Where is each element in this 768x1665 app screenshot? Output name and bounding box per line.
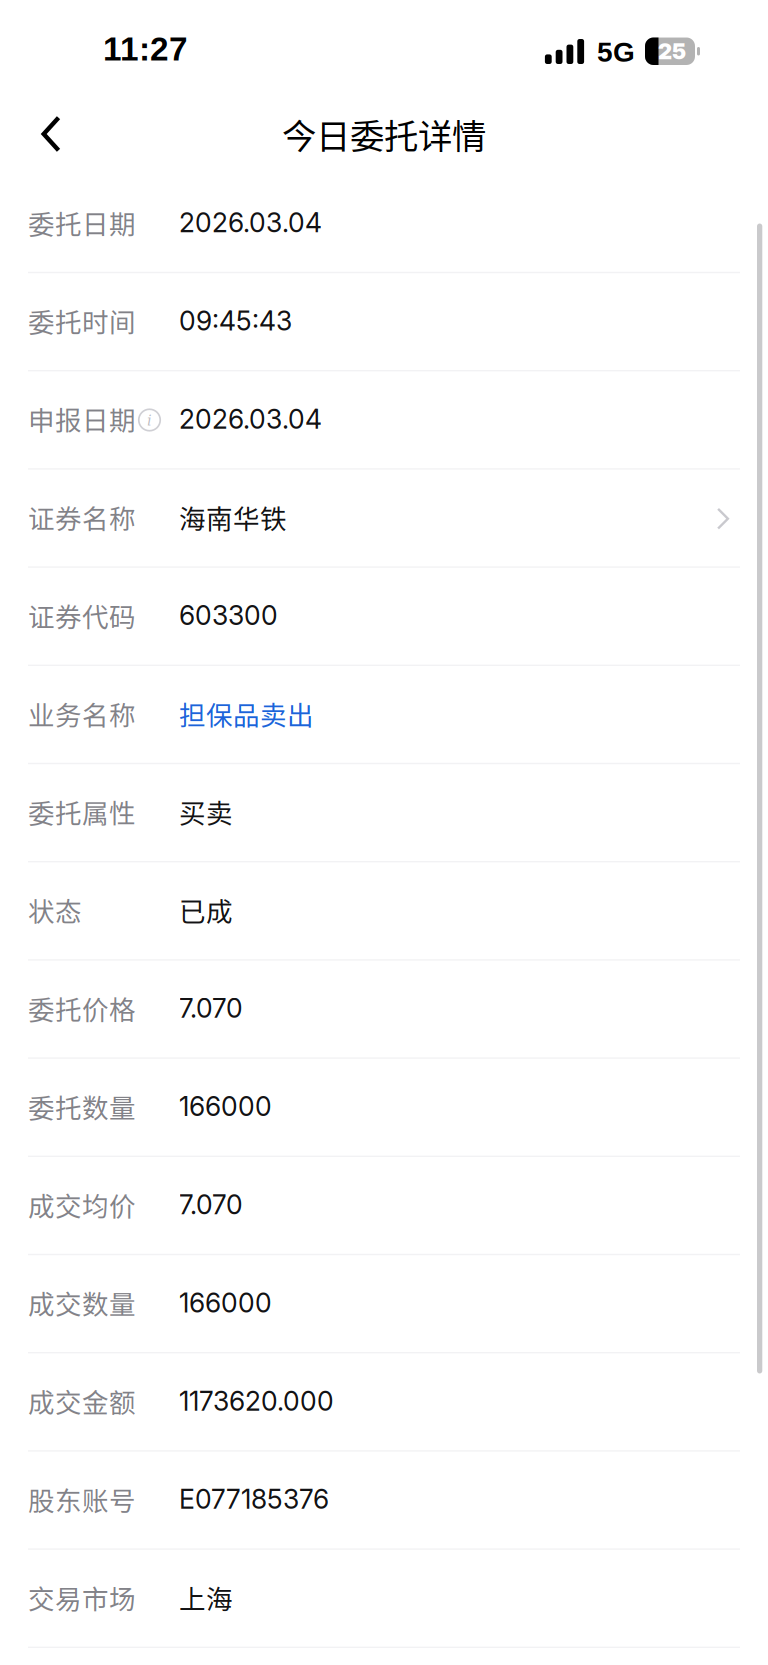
staticText: 25 xyxy=(658,38,686,64)
staticText: 成交均价 xyxy=(28,1185,136,1224)
staticText: 委托属性 xyxy=(28,793,136,831)
staticText: 成交金额 xyxy=(28,1382,136,1420)
staticText: 状态 xyxy=(28,891,82,929)
staticText: 166000 xyxy=(179,1090,272,1122)
staticText: 2026.03.04 xyxy=(179,206,322,239)
staticText: 7.070 xyxy=(179,1188,243,1221)
staticText: 证券代码 xyxy=(28,596,136,635)
staticText: 交易市场 xyxy=(28,1578,136,1617)
staticText: 603300 xyxy=(179,599,278,631)
staticText: E077185376 xyxy=(179,1483,329,1515)
staticText: 上海 xyxy=(179,1578,233,1617)
button[interactable]: 返回 xyxy=(14,97,88,171)
staticText: 委托价格 xyxy=(28,989,136,1027)
staticText: 今日委托详情 xyxy=(282,109,486,159)
staticText: 海南华铁 xyxy=(179,498,287,536)
staticText: 09:45:43 xyxy=(179,305,292,337)
staticText: 担保品卖出 xyxy=(179,694,314,733)
staticText: 1173620.000 xyxy=(179,1385,334,1417)
button[interactable]: 说明 xyxy=(136,407,163,430)
staticText: 已成 xyxy=(179,891,233,929)
staticText: 5G xyxy=(597,36,635,68)
staticText: 166000 xyxy=(179,1287,272,1319)
button[interactable]: 业务名称 xyxy=(0,666,768,764)
staticText: 委托时间 xyxy=(28,302,136,340)
staticText: 证券名称 xyxy=(28,498,136,536)
staticText: i xyxy=(147,412,152,429)
staticText: 买卖 xyxy=(179,793,233,831)
staticText: 股东账号 xyxy=(28,1480,136,1518)
staticText: 7.070 xyxy=(179,992,243,1024)
staticText: 业务名称 xyxy=(28,694,136,733)
staticText: 委托日期 xyxy=(28,203,136,242)
staticText: 申报日期 xyxy=(28,400,136,438)
staticText: 11:27 xyxy=(103,30,188,68)
staticText: 委托数量 xyxy=(28,1087,136,1126)
staticText: 2026.03.04 xyxy=(179,403,322,435)
staticText: 成交数量 xyxy=(28,1284,136,1322)
button[interactable]: 证券名称 xyxy=(0,470,768,568)
